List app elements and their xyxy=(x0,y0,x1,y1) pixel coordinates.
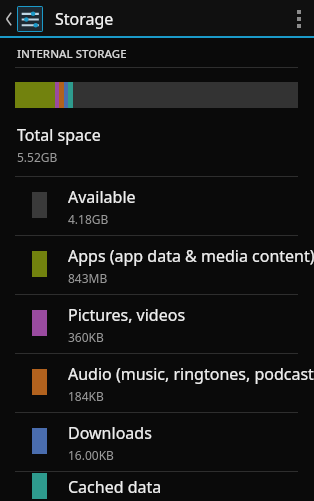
button[interactable]: Audio (music, ringtones, podcasts) xyxy=(0,354,314,412)
button[interactable]: Downloads xyxy=(0,413,314,471)
staticText: Cached data xyxy=(68,476,162,498)
staticText: Storage xyxy=(55,8,114,30)
staticText: Available xyxy=(68,186,136,208)
staticText: 16.00KB xyxy=(68,447,114,463)
staticText: 4.18GB xyxy=(68,211,109,227)
staticText: 184KB xyxy=(68,388,104,404)
staticText: Apps (app data & media content) xyxy=(68,245,314,267)
staticText: 843MB xyxy=(68,270,108,286)
staticText: Pictures, videos xyxy=(68,304,186,326)
staticText: INTERNAL STORAGE xyxy=(17,46,127,62)
button[interactable]: Apps (app data & media content) xyxy=(0,236,314,294)
staticText: Total space xyxy=(17,124,101,146)
staticText: 360KB xyxy=(68,329,104,345)
staticText: Downloads xyxy=(68,422,152,444)
button[interactable]: Cached data xyxy=(0,472,314,501)
button[interactable]: Available xyxy=(0,177,314,235)
button[interactable]: Navigate up, Storage settings xyxy=(0,6,49,32)
button[interactable]: Total space xyxy=(0,108,314,176)
staticText: 5.52GB xyxy=(17,149,58,165)
button[interactable]: More options xyxy=(284,0,314,38)
staticText: Audio (music, ringtones, podcasts) xyxy=(68,363,314,385)
button[interactable]: Pictures, videos xyxy=(0,295,314,353)
